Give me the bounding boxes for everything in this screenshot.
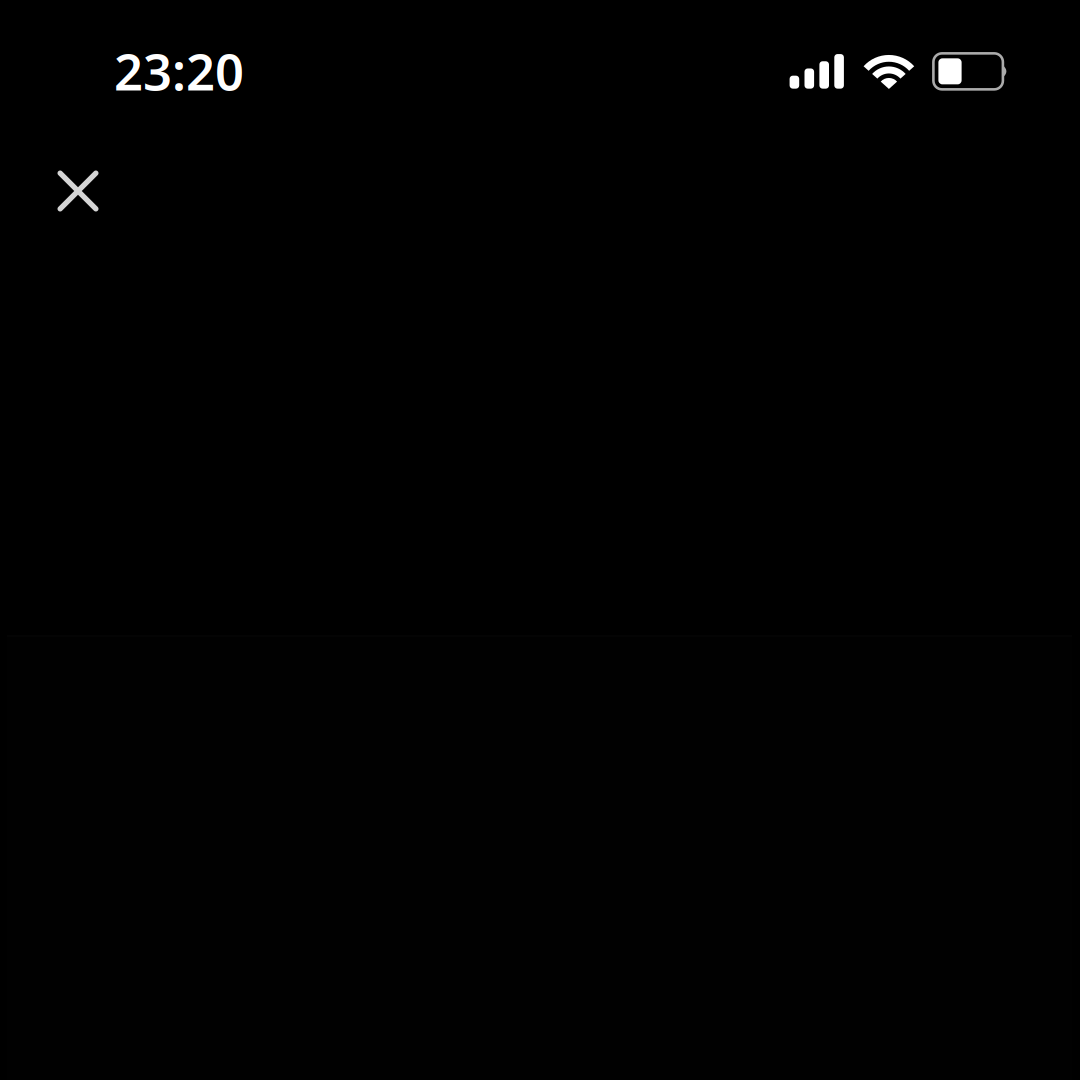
button[interactable]: Close <box>34 147 122 235</box>
staticText: 23:20 <box>114 37 244 104</box>
